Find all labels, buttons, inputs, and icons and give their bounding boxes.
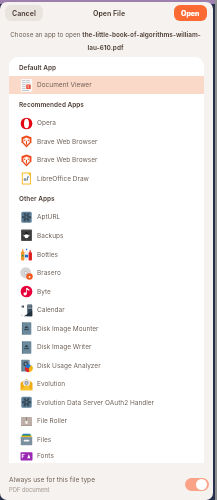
button[interactable]: Always use for this file type <box>185 478 209 491</box>
staticText: Byte <box>37 288 51 296</box>
staticText: Open <box>181 9 200 17</box>
button[interactable]: Fonts <box>9 449 204 463</box>
staticText: AptURL <box>37 213 61 221</box>
button[interactable]: Brave Web Browser <box>9 132 204 151</box>
staticText: Disk Image Writer <box>37 343 92 351</box>
staticText: Opera <box>37 119 56 127</box>
staticText: Default App <box>19 64 57 72</box>
button[interactable]: Calendar <box>9 301 204 319</box>
staticText: Document Viewer <box>37 81 92 89</box>
staticText: PDF document <box>9 486 50 493</box>
button[interactable]: Byte <box>9 282 204 301</box>
button[interactable]: Bottles <box>9 245 204 264</box>
staticText: Files <box>37 436 52 444</box>
button[interactable]: Backups <box>9 226 204 245</box>
button[interactable]: Brasero <box>9 264 204 282</box>
staticText: Recommended Apps <box>19 101 84 109</box>
staticText: Backups <box>37 232 64 240</box>
staticText: Bottles <box>37 251 59 259</box>
button[interactable]: Evolution <box>9 375 204 393</box>
button[interactable]: Disk Image Writer <box>9 338 204 356</box>
staticText: Brasero <box>37 269 61 277</box>
staticText: Evolution Data Server OAuth2 Handler <box>37 399 155 407</box>
button[interactable]: Disk Image Mounter <box>9 319 204 338</box>
staticText: Evolution <box>37 380 66 388</box>
staticText: Brave Web Browser <box>37 156 98 164</box>
button[interactable]: Cancel <box>5 5 43 21</box>
staticText: Calendar <box>37 306 65 314</box>
button[interactable]: Files <box>9 430 204 449</box>
button[interactable]: Evolution Data Server OAuth2 Handler <box>9 393 204 412</box>
staticText: File Roller <box>37 417 67 425</box>
button[interactable]: Opera <box>9 114 204 132</box>
staticText: Always use for this file type <box>9 476 95 484</box>
staticText: Cancel <box>12 9 36 17</box>
button[interactable]: File Roller <box>9 412 204 430</box>
staticText: Choose an app to open the-little-book-of… <box>7 31 204 51</box>
staticText: Open File <box>93 9 126 17</box>
button[interactable]: Disk Usage Analyzer <box>9 356 204 375</box>
staticText: Disk Usage Analyzer <box>37 362 101 370</box>
button[interactable]: Document Viewer <box>9 76 204 94</box>
staticText: Brave Web Browser <box>37 138 98 146</box>
staticText: Fonts <box>37 452 54 460</box>
staticText: Other Apps <box>19 195 55 203</box>
button[interactable]: Brave Web Browser <box>9 151 204 169</box>
staticText: LibreOffice Draw <box>37 175 89 183</box>
button[interactable]: AptURL <box>9 208 204 226</box>
button[interactable]: LibreOffice Draw <box>9 169 204 188</box>
staticText: Disk Image Mounter <box>37 325 99 333</box>
button[interactable]: Open <box>174 5 207 21</box>
